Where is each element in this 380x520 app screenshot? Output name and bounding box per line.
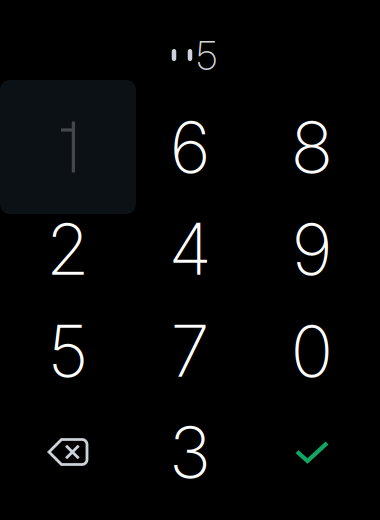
staticText: 7 xyxy=(170,308,209,394)
staticText: 2 xyxy=(46,206,90,292)
staticText: 5 xyxy=(47,308,88,394)
button[interactable]: Delete xyxy=(0,385,136,519)
button[interactable]: 6 xyxy=(122,80,258,214)
button[interactable]: Confirm passcode xyxy=(244,385,380,519)
staticText: 5 xyxy=(196,33,217,79)
button[interactable]: 7 xyxy=(122,284,258,418)
button[interactable]: 4 xyxy=(122,182,258,316)
staticText: 8 xyxy=(290,104,333,190)
button[interactable]: 2 xyxy=(0,182,136,316)
button[interactable]: 8 xyxy=(244,80,380,214)
button[interactable]: 0 xyxy=(244,284,380,418)
staticText: 9 xyxy=(291,206,332,292)
button[interactable]: 1 xyxy=(0,80,136,214)
button[interactable]: 9 xyxy=(244,182,380,316)
staticText: 6 xyxy=(169,104,210,190)
button[interactable]: 5 xyxy=(0,284,136,418)
staticText: 4 xyxy=(168,206,211,292)
staticText: 0 xyxy=(290,308,333,394)
button[interactable]: 3 xyxy=(122,385,258,519)
staticText: 3 xyxy=(169,409,211,495)
